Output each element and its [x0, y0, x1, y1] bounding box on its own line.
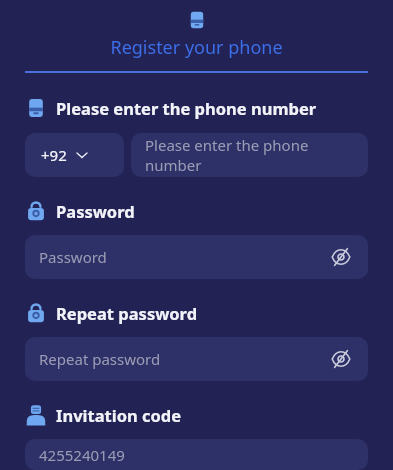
staticText: Password — [56, 200, 135, 222]
staticText: Password — [39, 247, 107, 267]
button[interactable]: Repeat password — [25, 337, 368, 381]
staticText: Please enter the phone number — [56, 97, 317, 119]
staticText: Invitation code — [56, 404, 182, 426]
staticText: Register your phone — [0, 35, 393, 60]
staticText: +92 — [41, 145, 67, 165]
button[interactable]: Show password — [328, 244, 354, 270]
button[interactable]: +92 — [25, 133, 124, 177]
button[interactable]: Password — [25, 235, 368, 279]
staticText: Repeat password — [56, 302, 198, 324]
staticText: Repeat password — [39, 349, 161, 369]
button[interactable]: 4255240149 — [25, 439, 368, 470]
button[interactable]: Show password — [328, 346, 354, 372]
button[interactable]: Please enter the phone number — [131, 133, 368, 177]
staticText: Please enter the phone number — [145, 135, 354, 175]
staticText: 4255240149 — [39, 445, 125, 465]
